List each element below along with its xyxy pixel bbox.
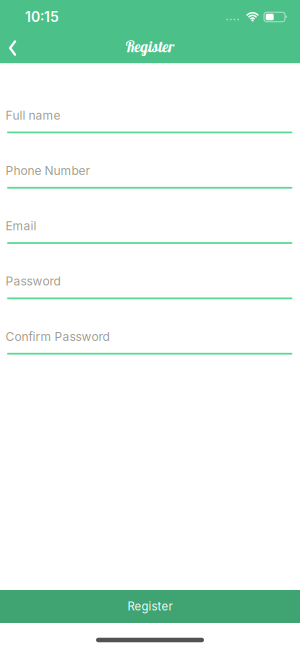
staticText: 10:15 <box>25 8 59 25</box>
textField[interactable]: Password <box>5 274 292 288</box>
button[interactable]: Register <box>0 590 300 623</box>
staticText: Full name <box>5 108 60 122</box>
textField[interactable]: Phone Number <box>5 163 292 178</box>
staticText: Phone Number <box>5 163 90 178</box>
staticText: Register <box>125 37 174 56</box>
button[interactable]: Back <box>0 37 16 56</box>
textField[interactable]: Confirm Password <box>5 329 292 344</box>
textField[interactable]: Email <box>5 219 292 233</box>
staticText: Confirm Password <box>5 329 109 344</box>
staticText: Register <box>127 600 172 613</box>
staticText: Password <box>5 274 60 288</box>
textField[interactable]: Full name <box>5 108 292 122</box>
staticText: Email <box>5 219 36 233</box>
